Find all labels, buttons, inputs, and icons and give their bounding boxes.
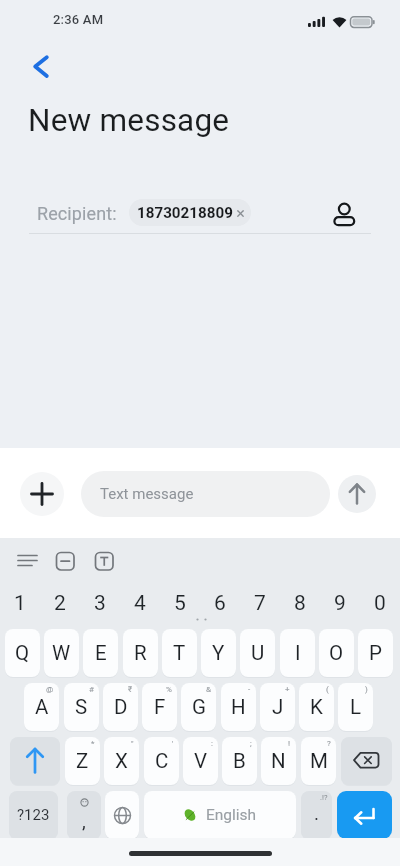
button[interactable]: A <box>24 683 59 731</box>
button[interactable]: 7 <box>240 586 280 620</box>
button[interactable]: English <box>144 791 296 839</box>
button[interactable]: 9 <box>320 586 360 620</box>
staticText: 4 <box>134 591 146 616</box>
staticText: Q <box>15 641 30 665</box>
staticText: ) <box>365 685 368 694</box>
staticText: : <box>211 739 213 748</box>
staticText: P <box>369 641 382 665</box>
staticText: V <box>194 749 208 773</box>
button[interactable]: R <box>123 629 158 677</box>
button[interactable]: M <box>301 737 336 785</box>
staticText: * <box>91 739 95 748</box>
staticText: New message <box>28 102 230 139</box>
button[interactable]: 0 <box>360 586 400 620</box>
staticText: & <box>206 685 211 694</box>
staticText: A <box>35 695 49 719</box>
staticText: % <box>166 685 172 694</box>
button[interactable]: N <box>261 737 296 785</box>
staticText: K <box>310 695 323 719</box>
staticText: # <box>89 685 94 694</box>
button[interactable]: P <box>358 629 393 677</box>
button[interactable]: B <box>222 737 257 785</box>
button[interactable]: 2 <box>40 586 80 620</box>
button[interactable]: L <box>338 683 373 731</box>
button[interactable]: F <box>142 683 177 731</box>
button[interactable] <box>105 791 139 839</box>
button[interactable] <box>14 549 42 573</box>
button[interactable]: 4 <box>120 586 160 620</box>
staticText: " <box>131 739 134 748</box>
button[interactable]: S <box>64 683 99 731</box>
button[interactable]: J <box>260 683 295 731</box>
button[interactable]: 1 <box>0 586 40 620</box>
staticText: Recipient: <box>37 203 117 224</box>
staticText: 0 <box>374 591 386 616</box>
button[interactable] <box>94 551 116 572</box>
button[interactable]: 5 <box>160 586 200 620</box>
staticText: 1 <box>14 591 26 616</box>
button[interactable]: 8 <box>280 586 320 620</box>
button[interactable]: V <box>183 737 218 785</box>
staticText: 9 <box>334 591 346 616</box>
button[interactable]: E <box>83 629 118 677</box>
button[interactable]: 18730218809 <box>129 199 251 226</box>
button[interactable]: K <box>299 683 334 731</box>
staticText: - <box>248 685 251 694</box>
staticText: ? <box>327 739 331 748</box>
staticText: ' <box>172 739 174 748</box>
staticText: ( <box>326 685 329 694</box>
staticText: H <box>231 695 246 719</box>
staticText: ?123 <box>17 806 50 824</box>
staticText: ! <box>288 739 291 748</box>
button[interactable] <box>341 737 392 785</box>
staticText: G <box>192 695 206 719</box>
button[interactable] <box>20 472 64 516</box>
staticText: ₹ <box>128 685 133 694</box>
button[interactable] <box>55 551 77 572</box>
button[interactable]: Y <box>201 629 236 677</box>
staticText: J <box>272 695 284 719</box>
button[interactable]: Q <box>5 629 40 677</box>
staticText: I <box>295 641 301 665</box>
button[interactable]: H <box>221 683 256 731</box>
button[interactable]: 3 <box>80 586 120 620</box>
staticText: W <box>52 641 71 665</box>
button[interactable]: . <box>301 791 332 839</box>
button[interactable]: 6 <box>200 586 240 620</box>
button[interactable]: C <box>144 737 179 785</box>
staticText: N <box>271 749 286 773</box>
staticText: , <box>82 810 86 832</box>
button[interactable]: W <box>44 629 79 677</box>
button[interactable] <box>338 475 376 513</box>
staticText: L <box>350 695 362 719</box>
staticText: T <box>173 641 186 665</box>
staticText: . <box>314 802 320 824</box>
button[interactable] <box>10 737 60 785</box>
staticText: 2:36 AM <box>53 12 104 27</box>
button[interactable]: X <box>104 737 139 785</box>
button[interactable]: Text message <box>81 471 330 517</box>
staticText: 2 <box>54 591 66 616</box>
staticText: C <box>155 749 169 773</box>
staticText: English <box>206 806 257 824</box>
button[interactable]: U <box>240 629 275 677</box>
button[interactable]: T <box>162 629 197 677</box>
button[interactable]: ?123 <box>9 791 58 839</box>
button[interactable]: Z <box>65 737 100 785</box>
staticText: S <box>75 695 88 719</box>
staticText: Text message <box>100 485 194 503</box>
staticText: U <box>251 641 265 665</box>
button[interactable] <box>337 791 392 839</box>
button[interactable]: I <box>280 629 315 677</box>
staticText: .!? <box>320 793 328 802</box>
button[interactable]: G <box>181 683 216 731</box>
staticText: E <box>95 641 107 665</box>
button[interactable]: D <box>103 683 138 731</box>
button[interactable] <box>22 45 62 87</box>
button[interactable] <box>327 193 363 231</box>
staticText: 3 <box>94 591 106 616</box>
staticText: 7 <box>254 591 266 616</box>
staticText: D <box>114 695 128 719</box>
button[interactable]: , <box>67 791 101 839</box>
button[interactable]: O <box>319 629 354 677</box>
